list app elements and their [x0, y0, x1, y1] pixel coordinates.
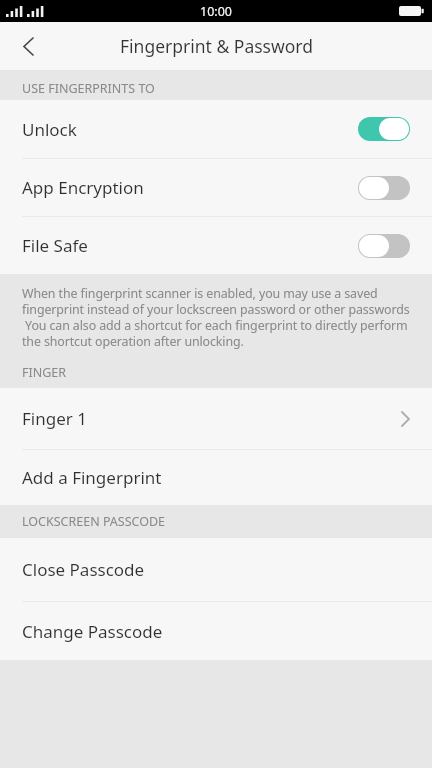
button[interactable]: Close Passcode [0, 538, 432, 601]
staticText: Add a Fingerprint [22, 466, 162, 489]
staticText: Fingerprint & Password [120, 34, 313, 58]
staticText: FINGER [22, 364, 67, 381]
staticText: Close Passcode [22, 558, 145, 581]
button[interactable]: Change Passcode [0, 602, 432, 660]
staticText: File Safe [22, 234, 88, 257]
staticText: When the fingerprint scanner is enabled,… [22, 285, 410, 350]
button[interactable] [358, 176, 410, 200]
staticText: LOCKSCREEN PASSCODE [22, 513, 166, 530]
staticText: Change Passcode [22, 620, 163, 643]
button[interactable] [358, 234, 410, 258]
button[interactable]: Finger 1 [0, 388, 432, 449]
button[interactable]: App Encryption [0, 159, 432, 216]
staticText: Finger 1 [22, 407, 87, 430]
staticText: 10:00 [200, 3, 232, 20]
button[interactable] [10, 28, 46, 64]
button[interactable]: Unlock [0, 100, 432, 158]
button[interactable]: Add a Fingerprint [0, 450, 432, 505]
button[interactable] [358, 117, 410, 141]
button[interactable]: File Safe [0, 217, 432, 274]
staticText: USE FINGERPRINTS TO [22, 80, 155, 97]
staticText: App Encryption [22, 176, 144, 199]
staticText: Unlock [22, 118, 77, 141]
